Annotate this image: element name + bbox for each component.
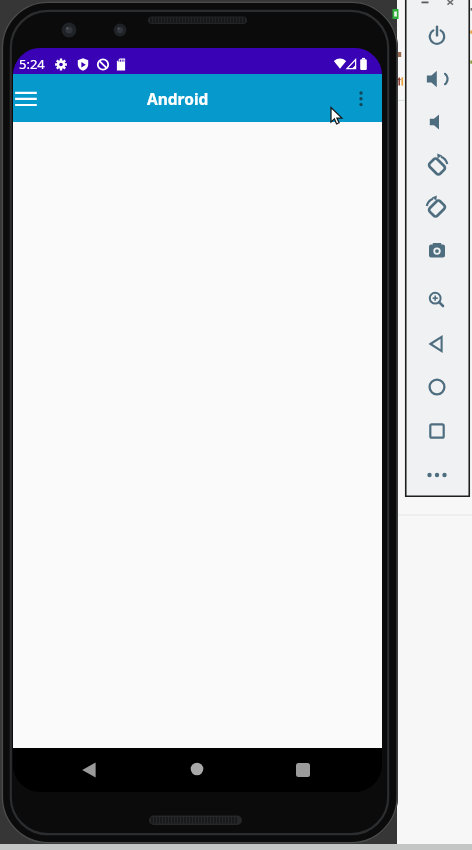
button[interactable] bbox=[179, 752, 215, 788]
button[interactable] bbox=[343, 75, 379, 122]
staticText: Android bbox=[147, 88, 209, 109]
button[interactable] bbox=[419, 369, 455, 405]
button[interactable] bbox=[419, 189, 455, 225]
button[interactable] bbox=[419, 18, 455, 54]
button[interactable] bbox=[13, 75, 56, 122]
button[interactable] bbox=[419, 326, 455, 362]
button[interactable] bbox=[419, 413, 455, 449]
button[interactable] bbox=[285, 752, 321, 788]
staticText: 5:24 bbox=[19, 55, 45, 73]
button[interactable] bbox=[419, 61, 455, 97]
button[interactable] bbox=[419, 147, 455, 183]
button[interactable] bbox=[419, 104, 455, 140]
button[interactable] bbox=[419, 233, 455, 269]
button[interactable] bbox=[419, 282, 455, 318]
button[interactable] bbox=[419, 457, 455, 493]
button[interactable] bbox=[71, 752, 107, 788]
